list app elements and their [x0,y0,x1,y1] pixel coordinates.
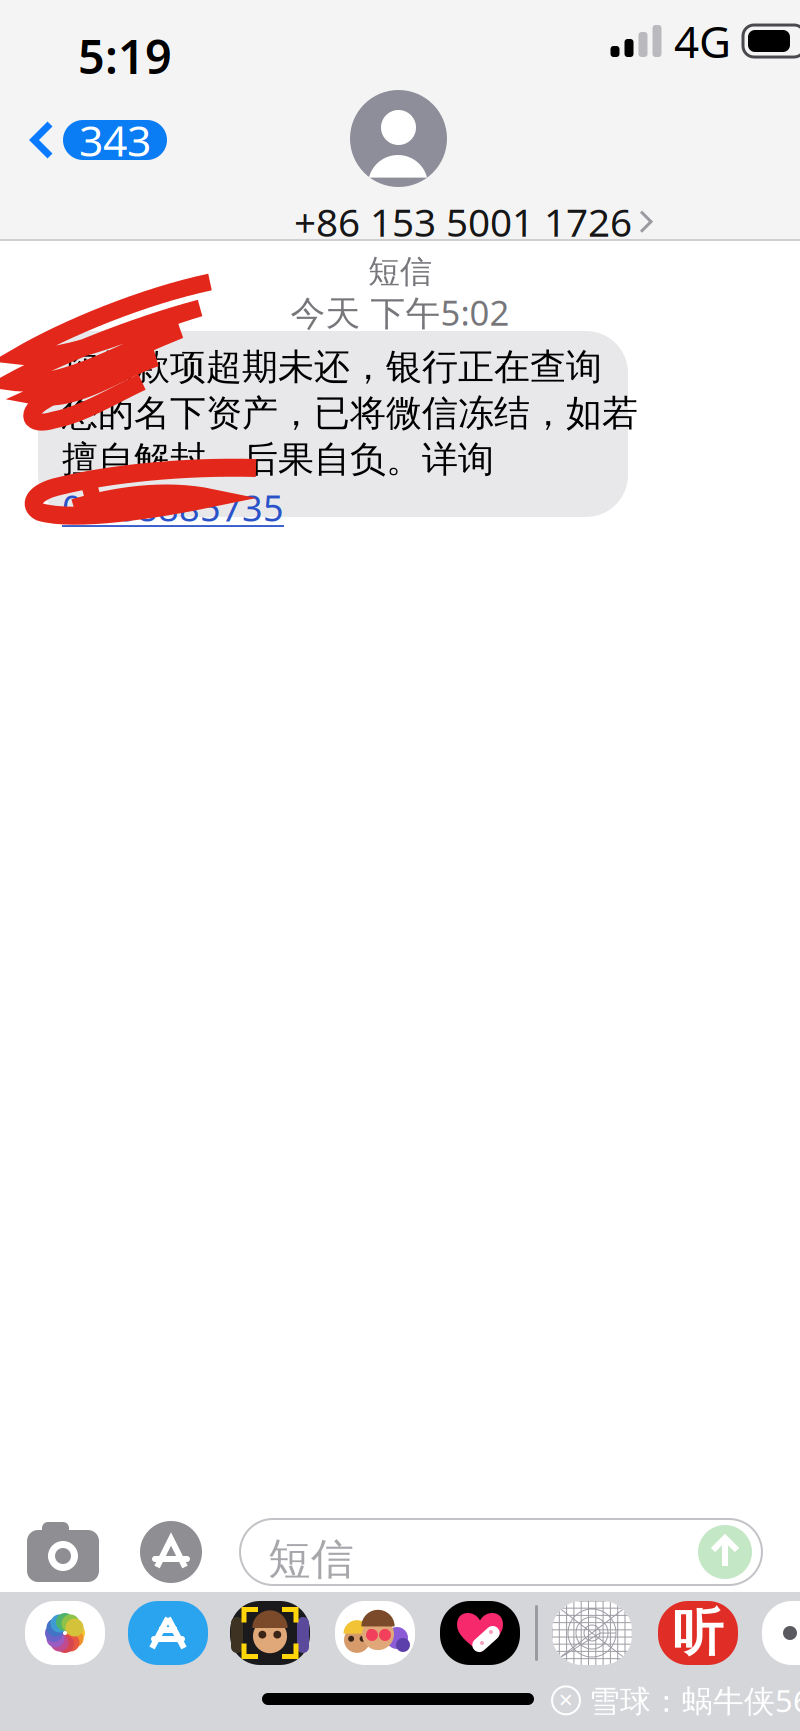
staticText: ✕ [558,1690,574,1711]
staticText: 雪球：蜗牛侠56 [589,1680,800,1721]
staticText: 4G [674,12,731,70]
staticText: +86 153 5001 1726 [294,196,632,247]
staticText: 5:19 [78,25,172,87]
button[interactable]: Send [698,1525,752,1579]
button[interactable]: Photos [25,1601,105,1665]
button[interactable]: App Store [128,1601,208,1665]
staticText: 您的名下资产，已将微信冻结，如若 [62,391,638,435]
staticText: 02-88885735 [62,484,284,531]
button[interactable]: +86 153 5001 1726 [284,190,663,253]
button[interactable]: More apps [762,1601,800,1665]
staticText: 今天 下午5:02 [290,289,509,335]
button[interactable]: Apps [140,1521,202,1583]
staticText: 您的款项超期未还，银行正在查询 [62,345,602,389]
button[interactable]: Back, 343 conversations [22,110,175,170]
button[interactable]: Memoji camera [230,1601,310,1665]
button[interactable]: Camera [27,1522,99,1582]
button[interactable]: Grid app [552,1601,632,1665]
button[interactable]: Ting [658,1601,738,1665]
staticText: 343 [79,112,151,168]
button[interactable]: Fitness [440,1601,520,1665]
staticText: 擅自解封，后果自负。详询 [62,437,494,482]
staticText: 短信 [368,252,432,291]
staticText: 短信 [268,1533,354,1585]
staticText: 听 [672,1602,723,1664]
button[interactable]: Memoji stickers [335,1601,415,1665]
